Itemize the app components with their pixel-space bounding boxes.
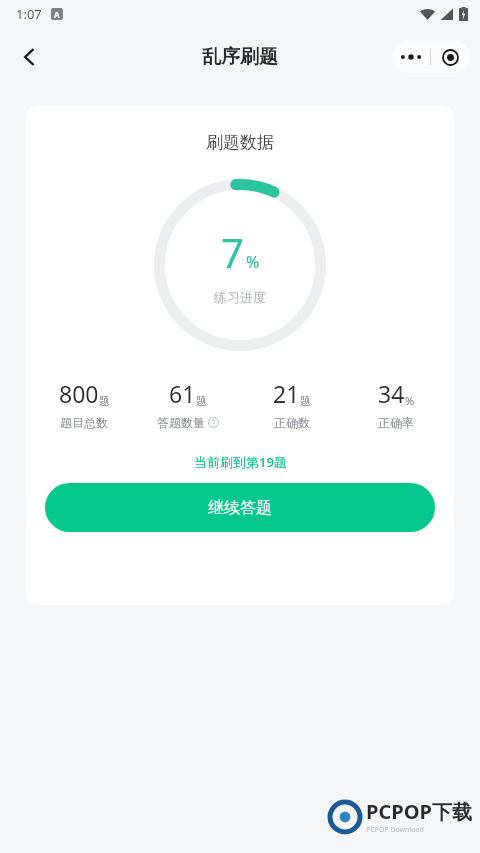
button[interactable]: 继续答题 — [45, 483, 435, 532]
staticText: % — [246, 251, 260, 273]
staticText: 练习进度 — [214, 289, 266, 305]
staticText: 题目总数 — [60, 415, 108, 430]
staticText: 34 — [378, 378, 405, 409]
button[interactable]: More — [392, 41, 470, 73]
button[interactable]: Close — [431, 41, 470, 73]
staticText: PCPOP下载 — [366, 798, 472, 825]
button[interactable]: 34 — [344, 378, 448, 430]
staticText: 正确率 — [378, 415, 414, 430]
staticText: 题 — [99, 394, 110, 408]
button[interactable]: More — [392, 41, 430, 73]
staticText: 乱序刷题 — [202, 45, 278, 69]
staticText: PCPOP Download — [366, 825, 424, 835]
staticText: 当前刷到第19题 — [194, 453, 287, 471]
button[interactable]: 800 — [32, 378, 136, 430]
staticText: 21 — [273, 378, 300, 409]
staticText: 题 — [300, 394, 311, 408]
staticText: 答题数量 — [157, 415, 205, 430]
staticText: 800 — [59, 378, 99, 409]
staticText: 继续答题 — [208, 498, 272, 518]
button[interactable]: 21 — [240, 378, 344, 430]
staticText: % — [405, 393, 415, 408]
button[interactable]: Back — [8, 35, 52, 79]
button[interactable]: 61 — [136, 378, 240, 430]
staticText: 1:07 — [16, 5, 42, 23]
staticText: 题 — [196, 394, 207, 408]
staticText: 正确数 — [274, 415, 310, 430]
staticText: 刷题数据 — [206, 132, 274, 153]
staticText: A — [54, 9, 60, 20]
staticText: 61 — [169, 378, 196, 409]
staticText: 7 — [221, 225, 244, 279]
